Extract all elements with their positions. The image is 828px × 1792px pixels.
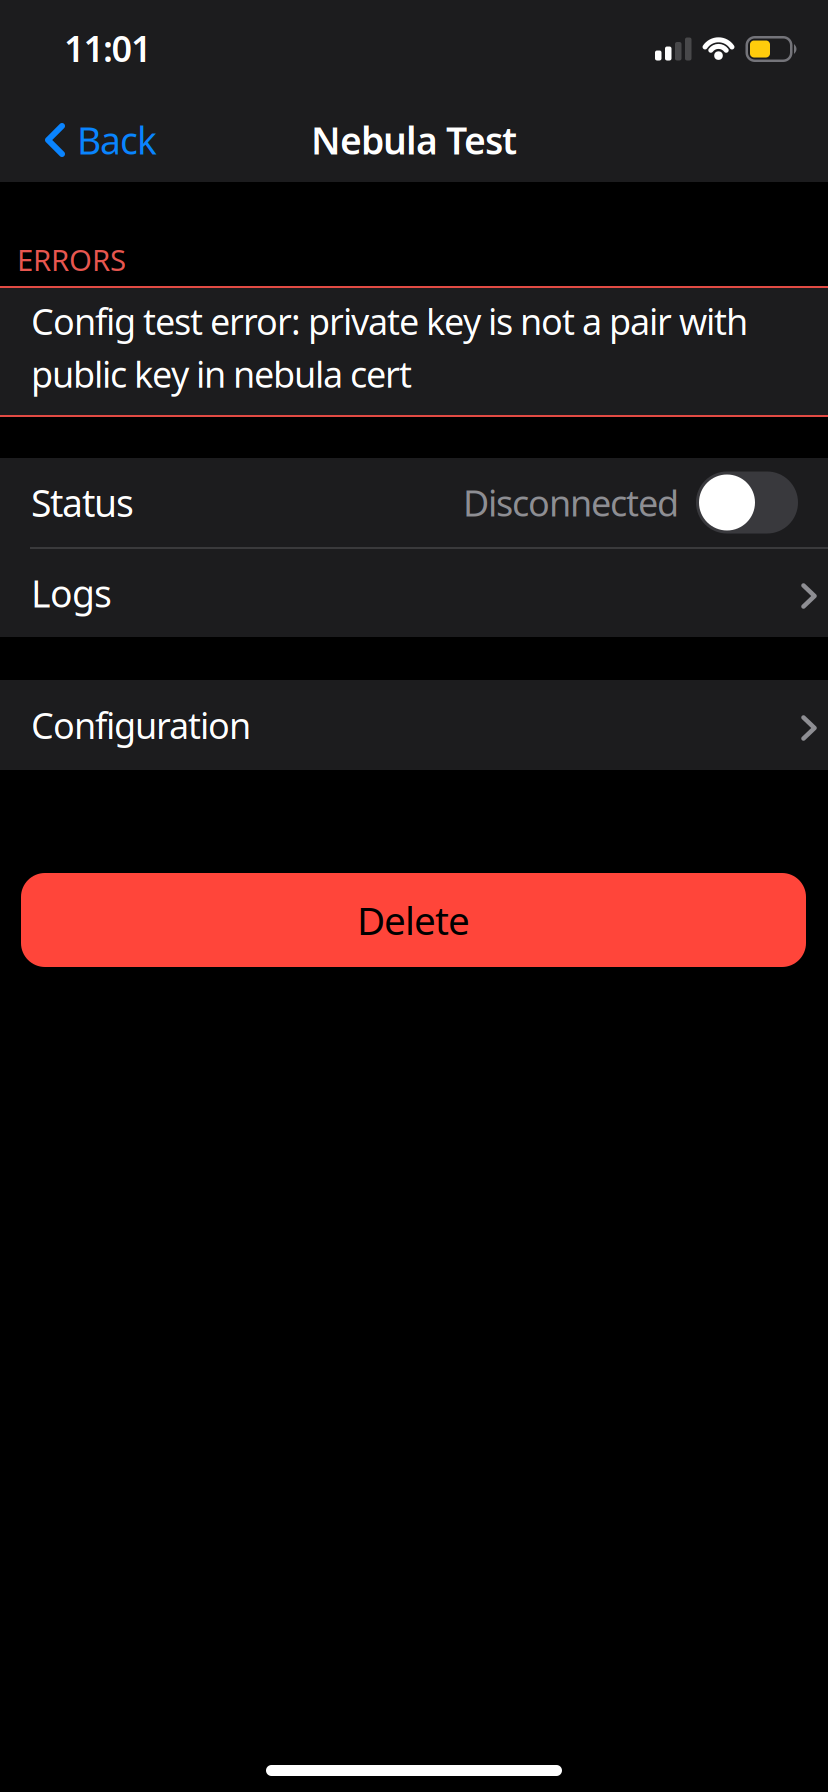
staticText: Delete [357,894,470,946]
staticText: public key in nebula cert [31,350,412,398]
staticText: 11:01 [64,24,152,72]
staticText: Config test error: private key is not a … [31,297,748,345]
staticText: Status [31,478,134,527]
button[interactable]: Status toggle [696,471,798,533]
button[interactable]: Delete [0,873,828,967]
staticText: Logs [31,568,112,618]
button[interactable]: Logs [0,549,828,637]
staticText: Back [77,115,157,165]
button[interactable]: Back [0,115,157,165]
button[interactable]: Configuration [0,680,828,770]
staticText: Nebula Test [311,115,517,165]
staticText: Disconnected [463,479,679,526]
staticText: Configuration [31,701,251,749]
staticText: ERRORS [17,240,126,279]
